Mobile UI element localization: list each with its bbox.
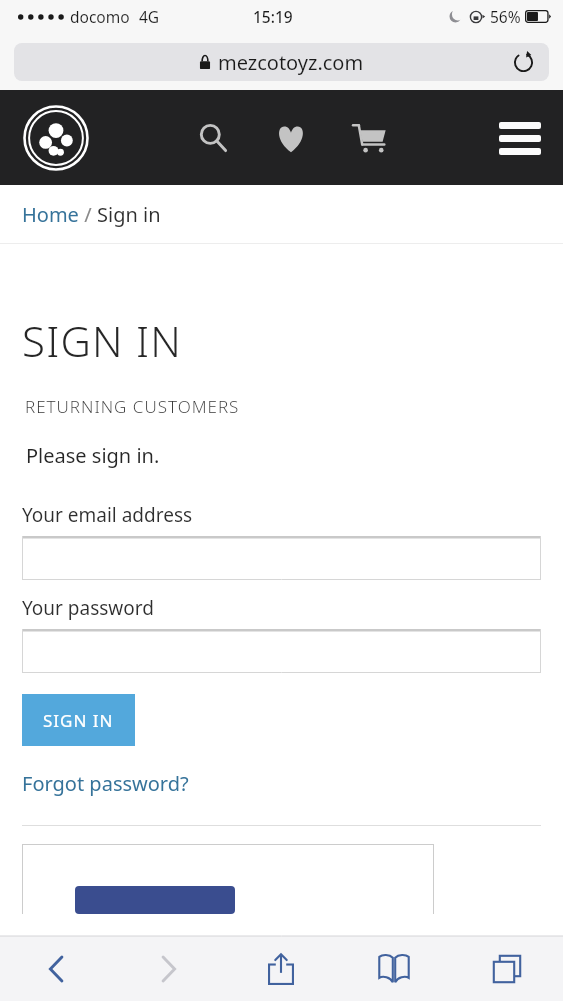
button[interactable]: Mezco Toyz home <box>22 104 89 171</box>
button[interactable]: Wishlist <box>268 115 314 161</box>
button[interactable]: Reload <box>507 46 539 78</box>
staticText: 4G <box>139 6 160 27</box>
button[interactable]: Home <box>22 201 79 228</box>
button[interactable] <box>75 886 235 914</box>
staticText: 15:19 <box>253 6 293 27</box>
staticText: docomo <box>70 6 130 27</box>
button[interactable]: mezcotoyz.com <box>14 43 549 81</box>
staticText: SIGN IN <box>43 709 114 732</box>
staticText: Please sign in. <box>26 442 160 469</box>
staticText: SIGN IN <box>22 312 183 369</box>
button[interactable]: Forgot password? <box>22 770 189 797</box>
staticText: Your password <box>22 595 154 621</box>
staticText: Sign in <box>97 201 161 228</box>
button[interactable]: Tabs <box>450 936 563 1001</box>
staticText: 56% <box>490 6 521 27</box>
staticText: Your email address <box>22 502 193 528</box>
button[interactable] <box>22 629 541 673</box>
staticText: mezcotoyz.com <box>218 49 364 76</box>
staticText: / <box>79 201 97 228</box>
staticText: Home <box>22 201 79 228</box>
button[interactable]: Forward <box>112 936 224 1001</box>
staticText: Forgot password? <box>22 770 189 797</box>
button[interactable]: Search <box>190 115 236 161</box>
button[interactable]: Bookmarks <box>337 936 450 1001</box>
staticText: RETURNING CUSTOMERS <box>25 395 240 418</box>
button[interactable]: Menu <box>495 113 545 163</box>
button[interactable]: Back <box>0 936 112 1001</box>
button[interactable]: Shopping cart <box>346 115 392 161</box>
button[interactable] <box>22 536 541 580</box>
button[interactable]: Share <box>224 936 337 1001</box>
button[interactable]: SIGN IN <box>22 694 135 746</box>
